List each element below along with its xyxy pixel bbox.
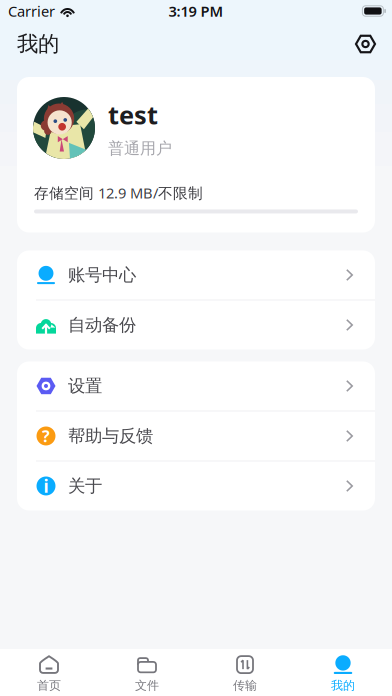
staticText: 我的 — [17, 31, 59, 57]
staticText: 普通用户 — [108, 138, 172, 158]
button[interactable]: i — [17, 461, 375, 510]
staticText: 账号中心 — [68, 264, 136, 286]
button[interactable]: 我的 — [294, 646, 392, 696]
button[interactable]: 设置 — [17, 361, 375, 410]
staticText: 传输 — [233, 678, 257, 693]
staticText: 帮助与反馈 — [68, 425, 153, 447]
staticText: 文件 — [135, 678, 159, 693]
staticText: test — [108, 98, 158, 131]
button[interactable]: 自动备份 — [17, 300, 375, 349]
staticText: 设置 — [68, 375, 102, 397]
staticText: 首页 — [37, 678, 61, 693]
button[interactable]: ? — [17, 411, 375, 460]
button[interactable]: 账号中心 — [17, 250, 375, 299]
staticText: 我的 — [331, 678, 355, 693]
staticText: 3:19 PM — [168, 1, 223, 21]
staticText: ? — [42, 425, 50, 447]
staticText: 存储空间 12.9 MB/不限制 — [34, 183, 203, 202]
button[interactable]: 首页 — [0, 646, 98, 696]
staticText: 自动备份 — [68, 314, 136, 336]
staticText: 关于 — [68, 475, 102, 497]
staticText: Carrier — [8, 1, 55, 21]
button[interactable]: 文件 — [98, 646, 196, 696]
button[interactable]: 传输 — [196, 646, 294, 696]
button[interactable]: Settings — [350, 28, 381, 59]
staticText: i — [43, 474, 48, 497]
